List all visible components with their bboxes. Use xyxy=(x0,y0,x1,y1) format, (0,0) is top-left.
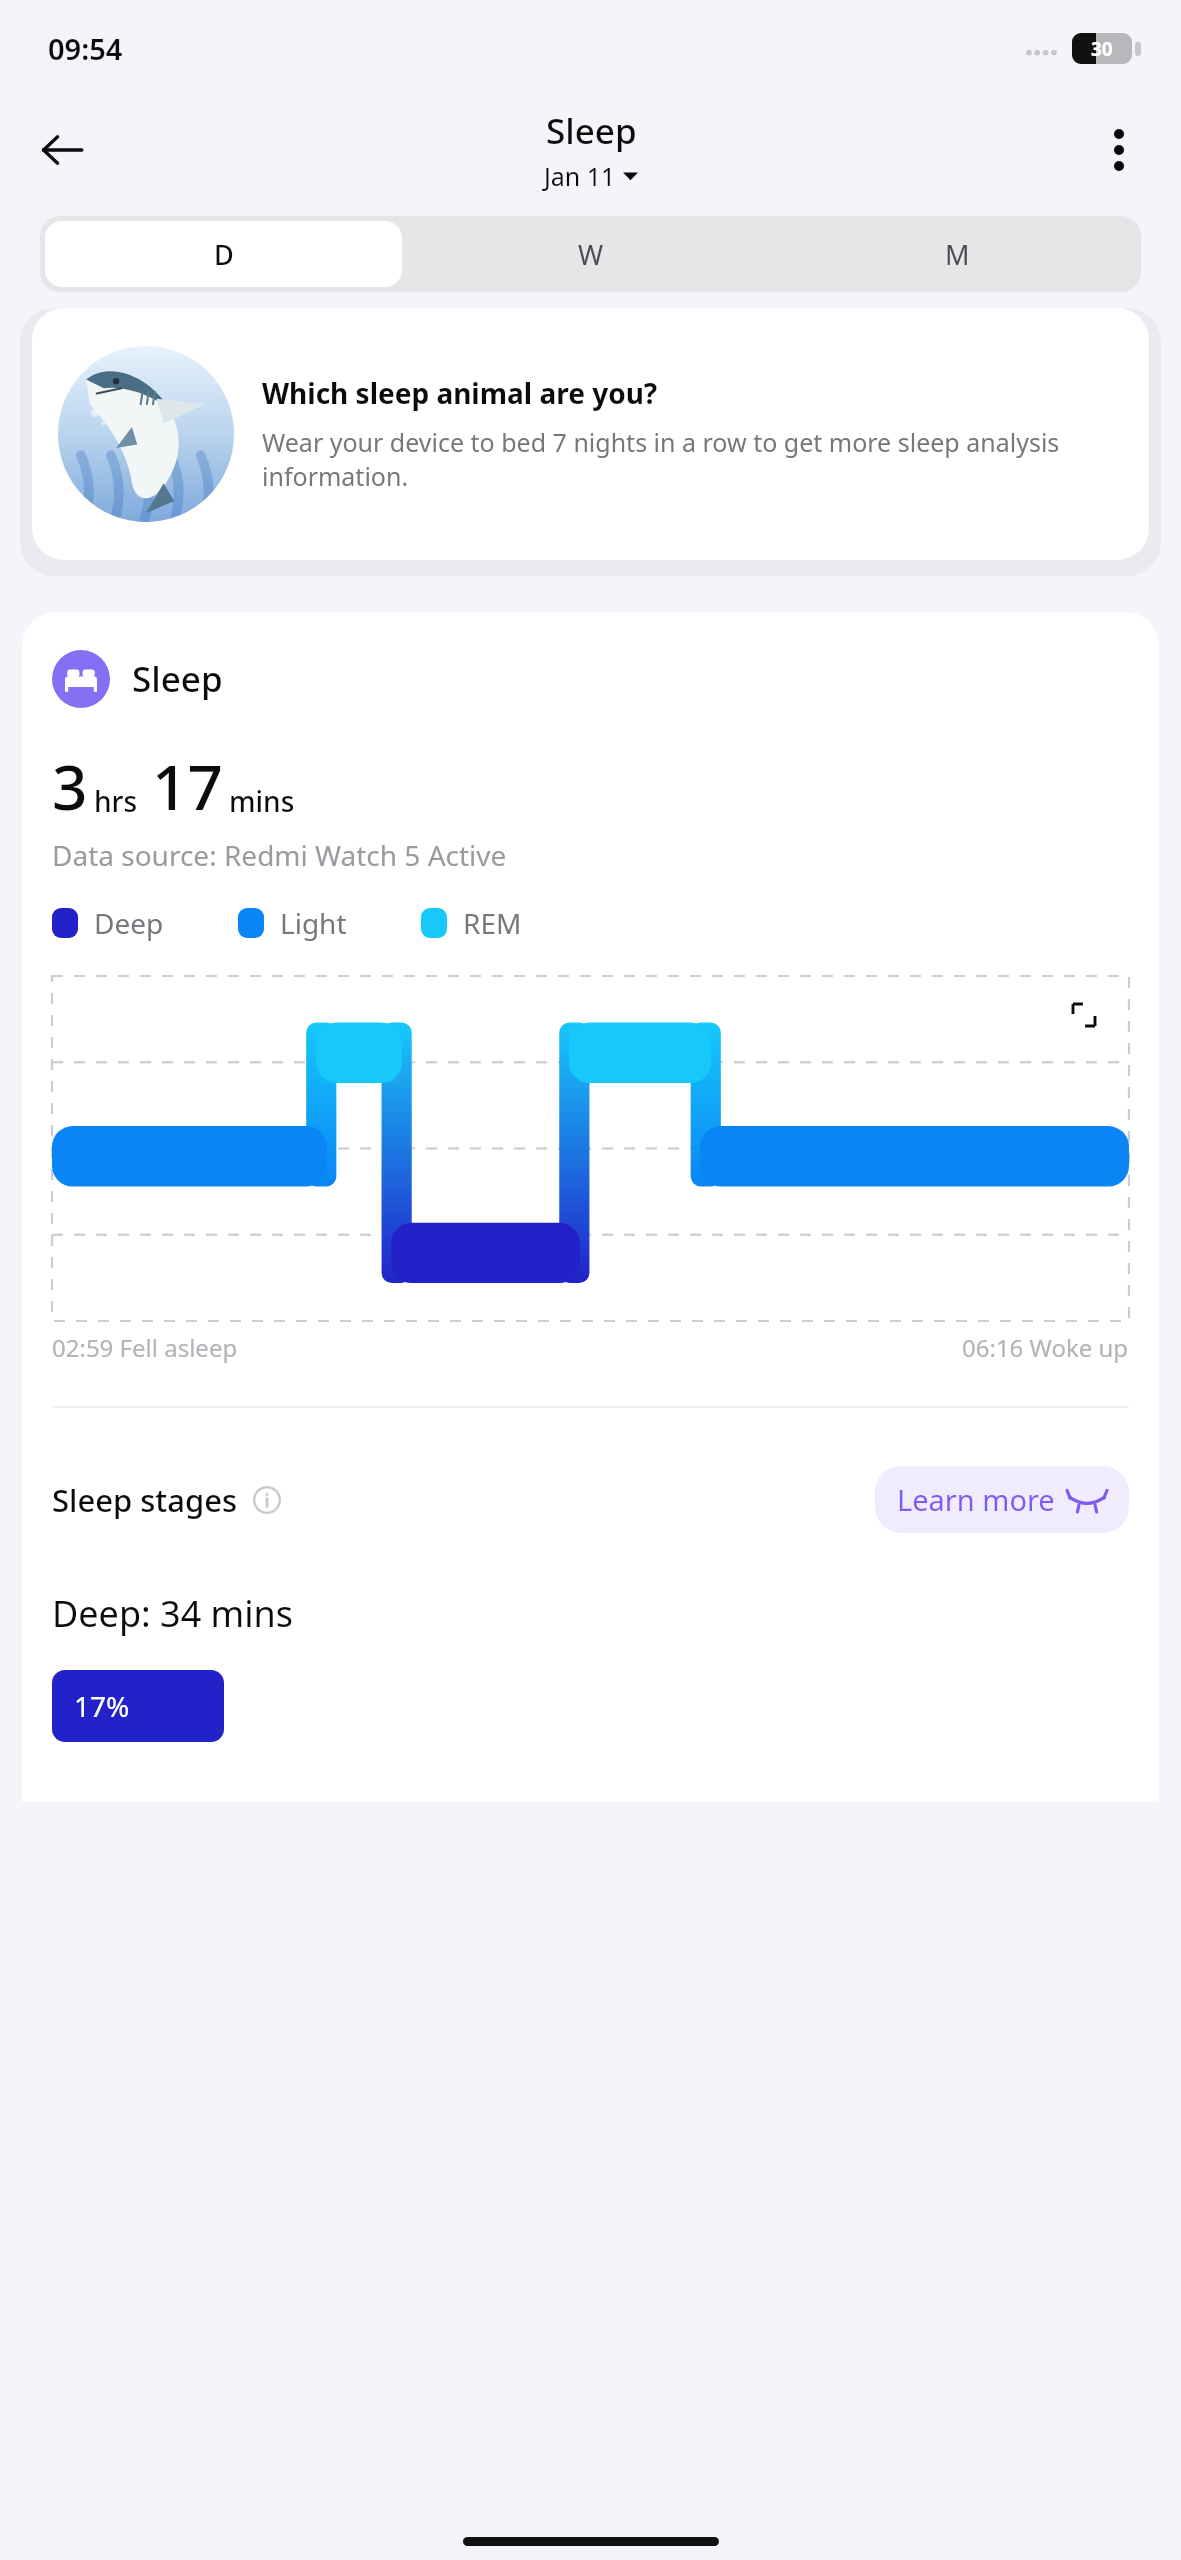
button[interactable]: Info about sleep stages xyxy=(252,1485,282,1515)
staticText: hrs xyxy=(94,782,138,820)
staticText: Sleep xyxy=(546,107,637,155)
button[interactable]: W xyxy=(412,221,769,287)
button[interactable]: Learn more xyxy=(875,1466,1129,1533)
staticText: mins xyxy=(229,782,295,820)
staticText: Which sleep animal are you? xyxy=(262,374,658,412)
staticText: Data source: Redmi Watch 5 Active xyxy=(52,836,507,874)
button[interactable]: Expand chart xyxy=(1057,988,1111,1042)
staticText: 06:16 Woke up xyxy=(962,1331,1129,1364)
staticText: 3 xyxy=(52,744,88,828)
staticText: 09:54 xyxy=(48,29,123,68)
button[interactable]: Jan 11 xyxy=(544,159,638,193)
staticText: 30 xyxy=(1091,36,1113,62)
staticText: Sleep xyxy=(132,655,223,703)
button[interactable]: Sleep xyxy=(52,650,223,708)
staticText: D xyxy=(214,236,234,273)
staticText: Jan 11 xyxy=(544,159,616,193)
staticText: 17% xyxy=(74,1687,130,1725)
button[interactable]: D xyxy=(45,221,402,287)
staticText: Deep: 34 mins xyxy=(52,1589,294,1638)
staticText: Light xyxy=(280,904,347,942)
staticText: M xyxy=(945,236,970,273)
button[interactable]: Deep xyxy=(52,904,164,942)
staticText: Wear your device to bed 7 nights in a ro… xyxy=(262,425,1123,494)
staticText: Learn more xyxy=(897,1480,1055,1519)
staticText: Sleep stages xyxy=(52,1479,238,1521)
staticText: Deep xyxy=(94,904,164,942)
button[interactable]: M xyxy=(779,221,1136,287)
staticText: 02:59 Fell asleep xyxy=(52,1331,238,1364)
button[interactable]: Back xyxy=(24,112,100,188)
staticText: 17 xyxy=(152,744,223,828)
staticText: REM xyxy=(463,904,522,942)
button[interactable]: Light xyxy=(238,904,347,942)
button[interactable]: More options xyxy=(1081,112,1157,188)
button[interactable]: REM xyxy=(421,904,522,942)
button[interactable]: Which sleep animal are you? xyxy=(32,308,1149,560)
staticText: W xyxy=(578,236,604,273)
